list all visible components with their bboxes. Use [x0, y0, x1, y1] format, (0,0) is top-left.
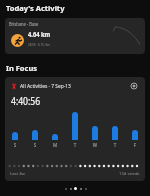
button[interactable]: Brisbane - Base [5, 18, 145, 54]
staticText: Brisbane - Base [9, 21, 38, 28]
staticText: M [45, 142, 65, 148]
staticText: F [125, 142, 145, 148]
staticText: W [85, 142, 105, 148]
staticText: S [5, 142, 25, 148]
staticText: 4.64 km [28, 30, 51, 39]
staticText: S [25, 142, 45, 148]
staticText: T [105, 142, 125, 148]
staticText: In Focus [6, 63, 38, 73]
button[interactable]: Explore [129, 81, 139, 91]
staticText: 4:40:56 [11, 93, 41, 109]
staticText: 13d streak [119, 171, 140, 177]
staticText: Last 4w [10, 171, 25, 177]
staticText: Today's Activity [6, 3, 65, 13]
staticText: T [65, 142, 85, 148]
staticText: All Activities · 7 Sep-13 [20, 83, 71, 90]
staticText: 28:59 · 6:15 /km [28, 42, 50, 47]
